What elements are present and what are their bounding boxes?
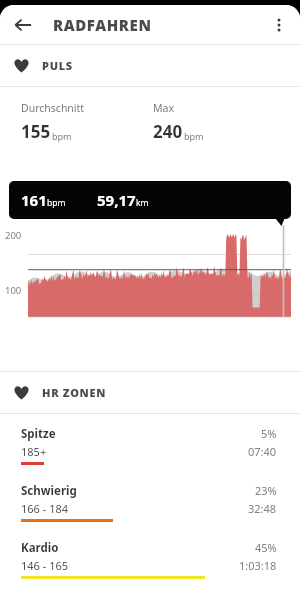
staticText: bpm: [52, 130, 72, 142]
staticText: Max: [153, 101, 174, 115]
staticText: 23%: [255, 483, 277, 498]
button[interactable]: HR ZONEN: [0, 372, 300, 413]
button[interactable]: PULS: [0, 45, 300, 86]
button[interactable]: Kardio: [0, 540, 300, 579]
staticText: 100: [5, 284, 22, 297]
staticText: Spitze: [21, 426, 56, 442]
staticText: 59,17: [97, 190, 136, 210]
staticText: km: [136, 197, 149, 209]
button[interactable]: Spitze: [0, 426, 300, 465]
staticText: 146 - 165: [21, 558, 69, 573]
staticText: bpm: [184, 130, 204, 142]
staticText: bpm: [47, 197, 66, 209]
staticText: 166 - 184: [21, 501, 69, 516]
button[interactable]: More options: [262, 8, 296, 42]
button[interactable]: Back: [6, 8, 40, 42]
staticText: 200: [5, 229, 22, 242]
staticText: Schwierig: [21, 483, 77, 499]
staticText: 5%: [261, 426, 277, 441]
button[interactable]: Schwierig: [0, 483, 300, 522]
staticText: 155: [21, 120, 51, 143]
staticText: 1:03:18: [239, 558, 277, 573]
staticText: RADFAHREN: [53, 15, 152, 35]
staticText: 240: [153, 120, 183, 143]
staticText: 45%: [255, 540, 277, 555]
staticText: 161: [21, 190, 47, 210]
staticText: 185+: [21, 444, 47, 459]
staticText: 07:40: [248, 444, 277, 459]
staticText: HR ZONEN: [42, 385, 107, 400]
staticText: PULS: [42, 58, 73, 73]
staticText: 32:48: [248, 501, 277, 516]
staticText: Kardio: [21, 540, 59, 556]
button[interactable]: 161: [9, 181, 291, 219]
staticText: Durchschnitt: [21, 101, 85, 115]
